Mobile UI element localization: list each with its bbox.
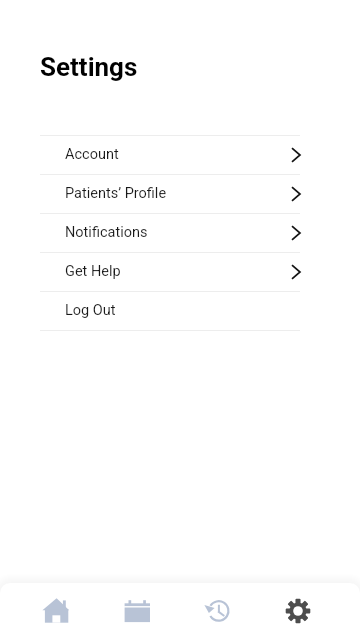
staticText: Settings [40, 52, 138, 82]
button[interactable]: Log Out [40, 292, 300, 330]
button[interactable]: Home [36, 591, 76, 631]
staticText: Get Help [65, 263, 121, 280]
button[interactable]: Get Help [40, 253, 300, 291]
button[interactable]: Settings [278, 591, 318, 631]
staticText: Log Out [65, 302, 116, 319]
button[interactable]: Patients’ Profile [40, 175, 300, 213]
button[interactable]: Account [40, 136, 300, 174]
button[interactable]: Calendar [117, 591, 157, 631]
staticText: Patients’ Profile [65, 185, 167, 202]
staticText: Account [65, 146, 119, 163]
button[interactable]: Notifications [40, 214, 300, 252]
staticText: Notifications [65, 224, 148, 241]
button[interactable]: History [197, 591, 237, 631]
